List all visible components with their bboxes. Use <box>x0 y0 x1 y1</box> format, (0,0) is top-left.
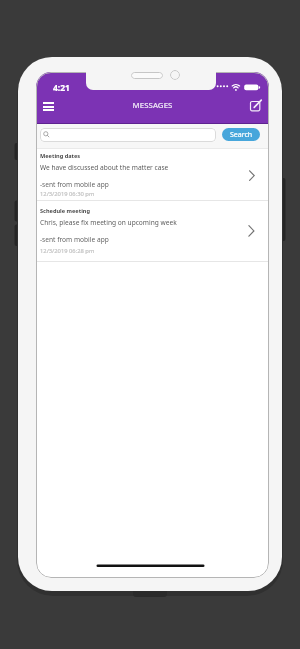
staticText: MESSAGES <box>36 100 269 111</box>
staticText: 12/3/2019 06:28 pm <box>40 247 95 255</box>
staticText: 4:21 <box>53 82 70 94</box>
staticText: We have discussed about the matter case <box>40 163 169 172</box>
staticText: Meeting dates <box>40 152 81 160</box>
button[interactable] <box>40 128 216 142</box>
staticText: Schedule meeting <box>40 207 90 215</box>
staticText: 12/3/2019 06:30 pm <box>40 190 95 198</box>
button[interactable]: Schedule meeting <box>36 200 269 261</box>
button[interactable]: Search <box>222 128 260 141</box>
staticText: -sent from mobile app <box>40 235 109 244</box>
staticText: Search <box>230 130 253 140</box>
button[interactable] <box>248 98 264 114</box>
button[interactable]: Meeting dates <box>36 149 269 200</box>
staticText: Chris, please fix meeting on upcoming we… <box>40 218 177 227</box>
button[interactable] <box>40 99 56 115</box>
staticText: -sent from mobile app <box>40 180 109 189</box>
